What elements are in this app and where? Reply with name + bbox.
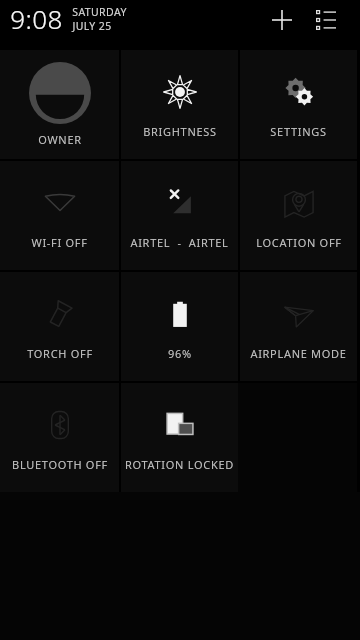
- staticText: ROTATION LOCKED: [125, 457, 234, 472]
- staticText: AIRPLANE MODE: [250, 346, 347, 361]
- button[interactable]: LOCATION OFF: [240, 161, 357, 270]
- button[interactable]: 96%: [121, 272, 238, 381]
- button[interactable]: ROTATION LOCKED: [121, 383, 238, 492]
- button[interactable]: OWNER: [0, 50, 119, 159]
- button[interactable]: BLUETOOTH OFF: [0, 383, 119, 492]
- button[interactable]: AIRPLANE MODE: [240, 272, 357, 381]
- staticText: 9:08: [10, 1, 63, 36]
- staticText: TORCH OFF: [27, 346, 93, 361]
- staticText: BRIGHTNESS: [143, 124, 217, 139]
- staticText: BLUETOOTH OFF: [12, 457, 108, 472]
- staticText: SATURDAY: [72, 5, 127, 19]
- staticText: WI-FI OFF: [31, 235, 88, 250]
- button[interactable]: AIRTEL - AIRTEL: [121, 161, 238, 270]
- button[interactable]: Add user: [262, 0, 302, 40]
- button[interactable]: BRIGHTNESS: [121, 50, 238, 159]
- staticText: SETTINGS: [270, 124, 327, 139]
- staticText: JULY 25: [72, 19, 112, 33]
- staticText: AIRTEL - AIRTEL: [130, 235, 229, 250]
- button[interactable]: Quick settings list: [306, 0, 346, 40]
- staticText: 96%: [168, 346, 192, 361]
- button[interactable]: WI-FI OFF: [0, 161, 119, 270]
- button[interactable]: SETTINGS: [240, 50, 357, 159]
- staticText: OWNER: [38, 132, 82, 147]
- button[interactable]: TORCH OFF: [0, 272, 119, 381]
- staticText: LOCATION OFF: [256, 235, 342, 250]
